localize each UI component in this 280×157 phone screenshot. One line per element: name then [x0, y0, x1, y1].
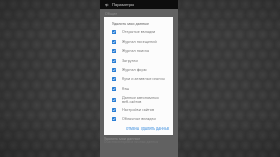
staticText: ОТМЕНА — [126, 127, 139, 131]
staticText: УДАЛИТЬ ДАННЫЕ — [141, 127, 170, 131]
staticText: Журнал поиска — [122, 48, 149, 53]
button[interactable]: Журнал форм — [112, 65, 172, 74]
button[interactable]: Back — [103, 1, 110, 8]
button[interactable]: ОТМЕНА — [125, 125, 140, 133]
button[interactable]: Кэш — [112, 84, 172, 93]
button[interactable]: Журнал посещений — [112, 37, 172, 46]
staticText: Общие — [105, 11, 118, 16]
staticText: Куки и активные сеансы — [122, 76, 165, 81]
button[interactable]: Загрузки — [112, 56, 172, 65]
staticText: Открытые вкладки — [122, 29, 156, 34]
staticText: Журнал посещений — [122, 39, 157, 44]
button[interactable]: Данные автономных веб-сайтов — [112, 95, 172, 104]
button[interactable]: УДАЛИТЬ ДАННЫЕ — [140, 125, 171, 133]
button[interactable]: Открытые вкладки — [112, 27, 172, 36]
button[interactable]: Журнал поиска — [112, 46, 172, 55]
button[interactable]: Облачные вкладки — [112, 114, 172, 123]
staticText: Облачные вкладки — [122, 116, 156, 121]
staticText: Настройки сайтов — [122, 107, 154, 112]
staticText: Удалить мои данные — [112, 21, 150, 26]
button[interactable]: Куки и активные сеансы — [112, 74, 172, 83]
staticText: Загрузки — [122, 58, 138, 63]
staticText: Данные автономных веб-сайтов — [122, 95, 159, 104]
staticText: Очистка истории и личных данных — [104, 140, 159, 144]
staticText: Параметры — [112, 2, 135, 7]
staticText: Кэш — [122, 86, 130, 91]
button[interactable]: Настройки сайтов — [112, 105, 172, 114]
staticText: Журнал форм — [122, 67, 147, 72]
staticText: Удалить мои данные — [104, 136, 141, 141]
